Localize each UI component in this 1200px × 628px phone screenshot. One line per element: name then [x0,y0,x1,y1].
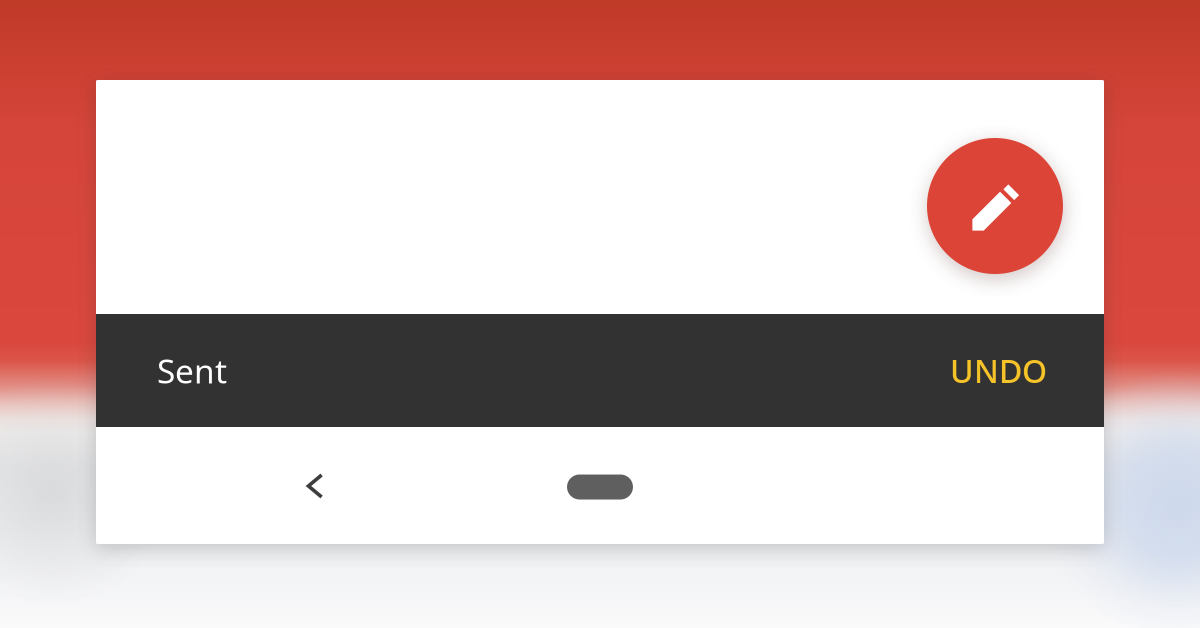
button[interactable]: Home [540,451,660,523]
button[interactable]: Compose [927,138,1063,274]
button[interactable]: UNDO [950,349,1047,392]
staticText: Sent [157,348,227,393]
button[interactable]: Back [279,450,351,522]
staticText: UNDO [950,349,1047,392]
